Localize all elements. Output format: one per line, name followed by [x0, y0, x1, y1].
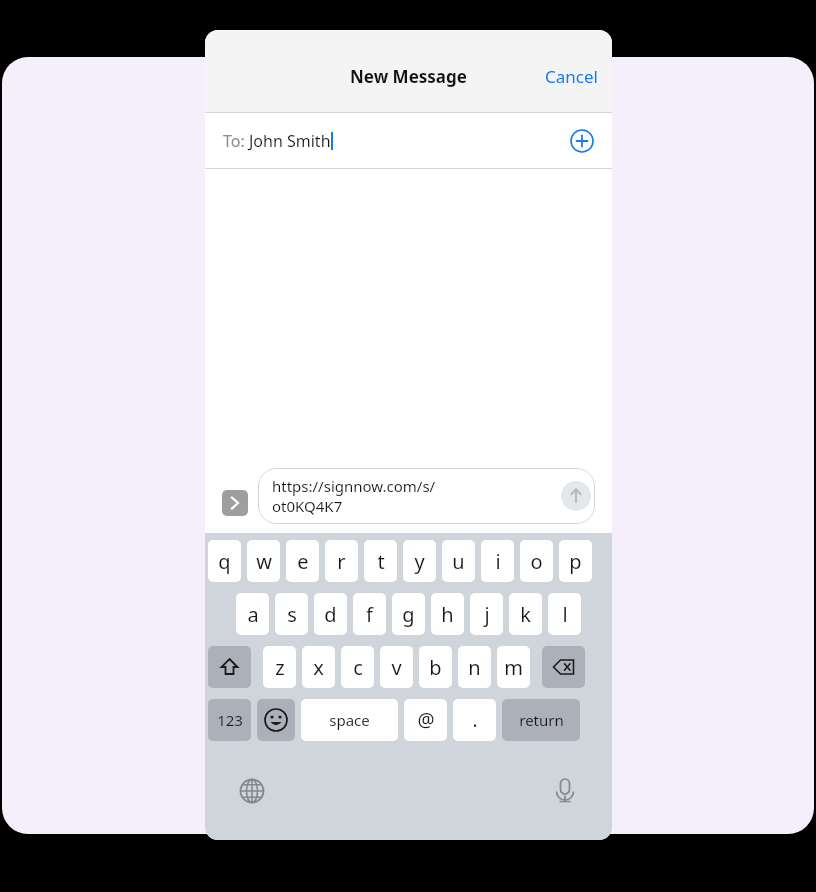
button[interactable]: o [520, 540, 553, 582]
button[interactable]: return [502, 699, 580, 741]
staticText: To: [223, 130, 249, 152]
staticText: j [484, 601, 490, 628]
button[interactable]: z [263, 646, 296, 688]
button[interactable]: f [353, 593, 386, 635]
staticText: y [414, 548, 425, 575]
button[interactable]: 123 [208, 699, 251, 741]
staticText: x [313, 654, 324, 681]
staticText: i [495, 548, 501, 575]
button[interactable]: w [247, 540, 280, 582]
button[interactable]: i [481, 540, 514, 582]
button[interactable]: y [403, 540, 436, 582]
button[interactable]: r [325, 540, 358, 582]
staticText: h [441, 601, 454, 628]
staticText: d [324, 601, 337, 628]
staticText: r [337, 548, 346, 575]
button[interactable]: Cancel [531, 59, 612, 94]
staticText: n [468, 654, 481, 681]
staticText: v [391, 654, 402, 681]
button[interactable]: https://signnow.com/s/ ot0KQ4K7 [258, 468, 595, 524]
staticText: t [377, 548, 385, 575]
button[interactable]: h [431, 593, 464, 635]
button[interactable]: @ [404, 699, 447, 741]
button[interactable]: Emoji [257, 699, 295, 741]
button[interactable]: k [509, 593, 542, 635]
staticText: o [530, 548, 543, 575]
staticText: u [452, 548, 465, 575]
button[interactable]: Dictate [550, 776, 580, 806]
staticText: New Message [350, 65, 467, 88]
button[interactable]: x [302, 646, 335, 688]
button[interactable]: p [559, 540, 592, 582]
staticText: w [256, 548, 272, 575]
button[interactable]: m [497, 646, 530, 688]
staticText: b [429, 654, 442, 681]
staticText: g [402, 601, 415, 628]
staticText: q [218, 548, 231, 575]
staticText: 123 [217, 710, 243, 730]
staticText: f [366, 601, 373, 628]
button[interactable]: Add contact [570, 129, 594, 153]
button[interactable]: g [392, 593, 425, 635]
button[interactable]: t [364, 540, 397, 582]
staticText: c [353, 654, 363, 681]
staticText: m [504, 654, 523, 681]
staticText: p [569, 548, 582, 575]
staticText: John Smith [249, 130, 331, 152]
staticText: e [297, 548, 309, 575]
button[interactable]: a [236, 593, 269, 635]
button[interactable]: . [453, 699, 496, 741]
button[interactable]: Send [561, 481, 591, 511]
button[interactable]: u [442, 540, 475, 582]
button[interactable]: j [470, 593, 503, 635]
staticText: https://signnow.com/s/ ot0KQ4K7 [272, 476, 436, 516]
button[interactable]: Delete [542, 646, 585, 688]
staticText: k [520, 601, 531, 628]
staticText: Cancel [545, 65, 598, 88]
button[interactable]: l [548, 593, 581, 635]
button[interactable]: b [419, 646, 452, 688]
button[interactable]: Change keyboard [237, 776, 267, 806]
button[interactable]: s [275, 593, 308, 635]
button[interactable]: Expand apps [222, 490, 248, 516]
staticText: l [562, 601, 568, 628]
staticText: @ [417, 707, 435, 733]
button[interactable]: n [458, 646, 491, 688]
button[interactable]: q [208, 540, 241, 582]
staticText: space [329, 710, 370, 730]
staticText: a [247, 601, 259, 628]
button[interactable]: d [314, 593, 347, 635]
staticText: z [275, 654, 285, 681]
button[interactable]: e [286, 540, 319, 582]
button[interactable]: c [341, 646, 374, 688]
staticText: . [472, 707, 478, 733]
staticText: return [519, 710, 564, 730]
button[interactable]: Shift [208, 646, 251, 688]
button[interactable]: v [380, 646, 413, 688]
button[interactable]: space [301, 699, 398, 741]
staticText: s [287, 601, 297, 628]
